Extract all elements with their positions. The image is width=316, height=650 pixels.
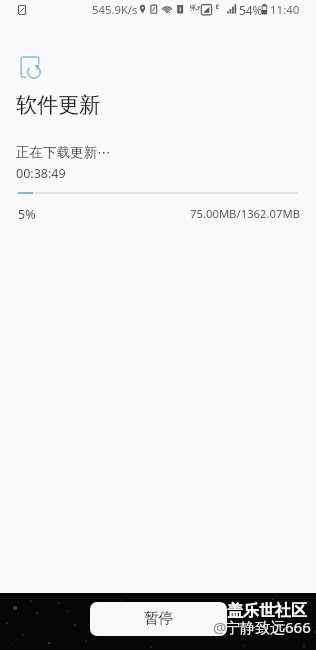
other: Software update (20, 56, 44, 80)
staticText: 00:38:49 (16, 165, 66, 182)
staticText: 软件更新 (16, 92, 100, 118)
staticText: 75.00MB/1362.07MB (190, 206, 301, 221)
staticText: 11:40 (270, 2, 300, 18)
staticText: 5% (18, 206, 36, 223)
staticText: 545.9K/s (92, 2, 138, 17)
staticText: 盖乐世社区 (227, 601, 307, 621)
staticText: 54% (239, 2, 263, 18)
button[interactable]: 暂停 (90, 602, 227, 636)
staticText: @ (213, 617, 227, 637)
staticText: 正在下载更新⋯ (16, 144, 111, 161)
staticText: 宁静致远666 . (225, 617, 316, 637)
staticText: 暂停 (144, 609, 173, 627)
